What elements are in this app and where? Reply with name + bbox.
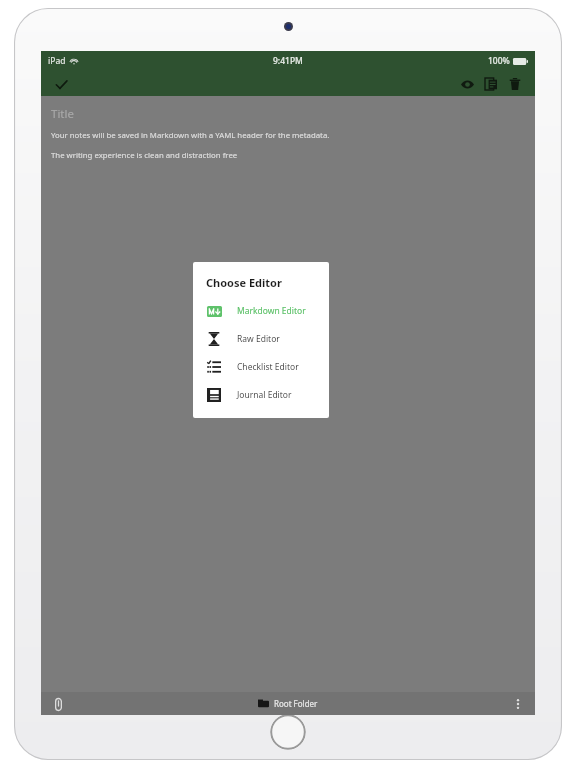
staticText: Raw Editor <box>237 333 280 345</box>
staticText: 100% <box>488 55 510 67</box>
staticText: Your notes will be saved in Markdown wit… <box>51 130 330 141</box>
button[interactable]: Preview <box>456 73 478 95</box>
staticText: Journal Editor <box>237 389 292 401</box>
staticText: iPad <box>48 55 66 67</box>
staticText: Checklist Editor <box>237 361 299 373</box>
button[interactable]: Journal Editor <box>206 387 319 403</box>
button[interactable]: Attach <box>49 695 67 713</box>
button[interactable]: Home <box>270 714 306 750</box>
button[interactable]: More options <box>509 695 527 713</box>
staticText: Title <box>51 106 74 122</box>
button[interactable]: Raw Editor <box>206 331 319 347</box>
button[interactable]: Root Folder <box>258 698 318 709</box>
staticText: Markdown Editor <box>237 305 306 317</box>
button[interactable]: Checklist Editor <box>206 359 319 375</box>
staticText: Root Folder <box>274 698 318 709</box>
staticText: Choose Editor <box>206 275 282 290</box>
button[interactable]: Done <box>50 73 72 95</box>
staticText: The writing experience is clean and dist… <box>51 150 238 161</box>
button[interactable]: Editor type <box>480 73 502 95</box>
staticText: 9:41PM <box>273 55 303 67</box>
button[interactable]: Delete <box>504 73 526 95</box>
button[interactable]: Markdown Editor <box>206 303 319 319</box>
